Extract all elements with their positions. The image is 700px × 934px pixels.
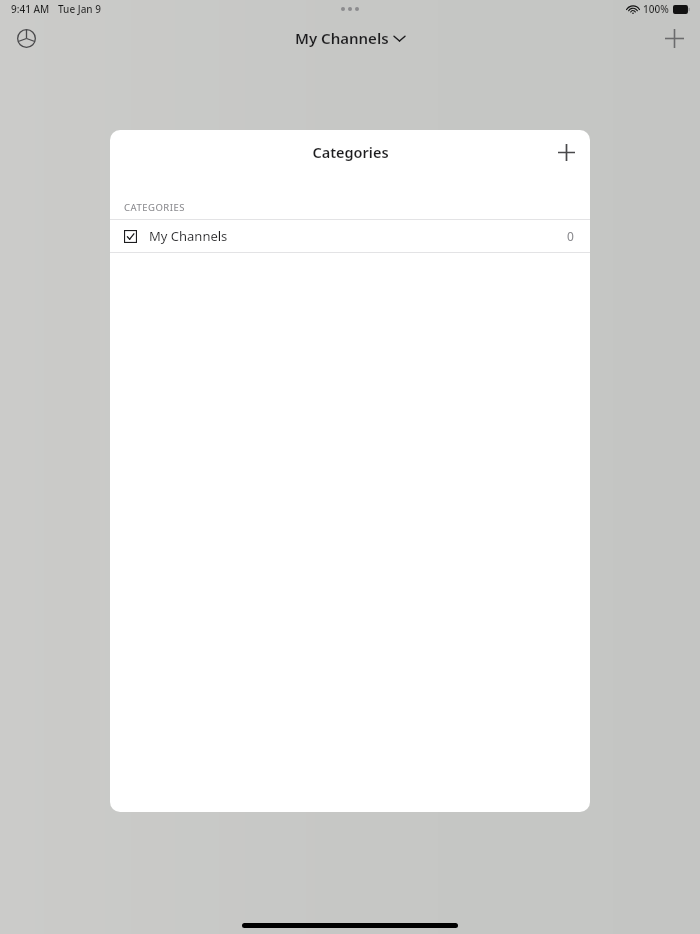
staticText: 0 [567, 228, 574, 244]
staticText: Categories [312, 142, 389, 162]
staticText: Tue Jan 9 [58, 2, 101, 16]
button[interactable]: Settings [10, 22, 42, 54]
staticText: My Channels [149, 227, 228, 245]
button[interactable]: Add [658, 22, 690, 54]
button[interactable]: My Channels [289, 24, 411, 52]
button[interactable]: Add category [550, 136, 582, 168]
staticText: CATEGORIES [124, 201, 185, 214]
staticText: My Channels [295, 28, 389, 48]
staticText: 9:41 AM [11, 2, 50, 16]
button[interactable]: My Channels [110, 220, 590, 252]
staticText: 100% [643, 2, 669, 16]
